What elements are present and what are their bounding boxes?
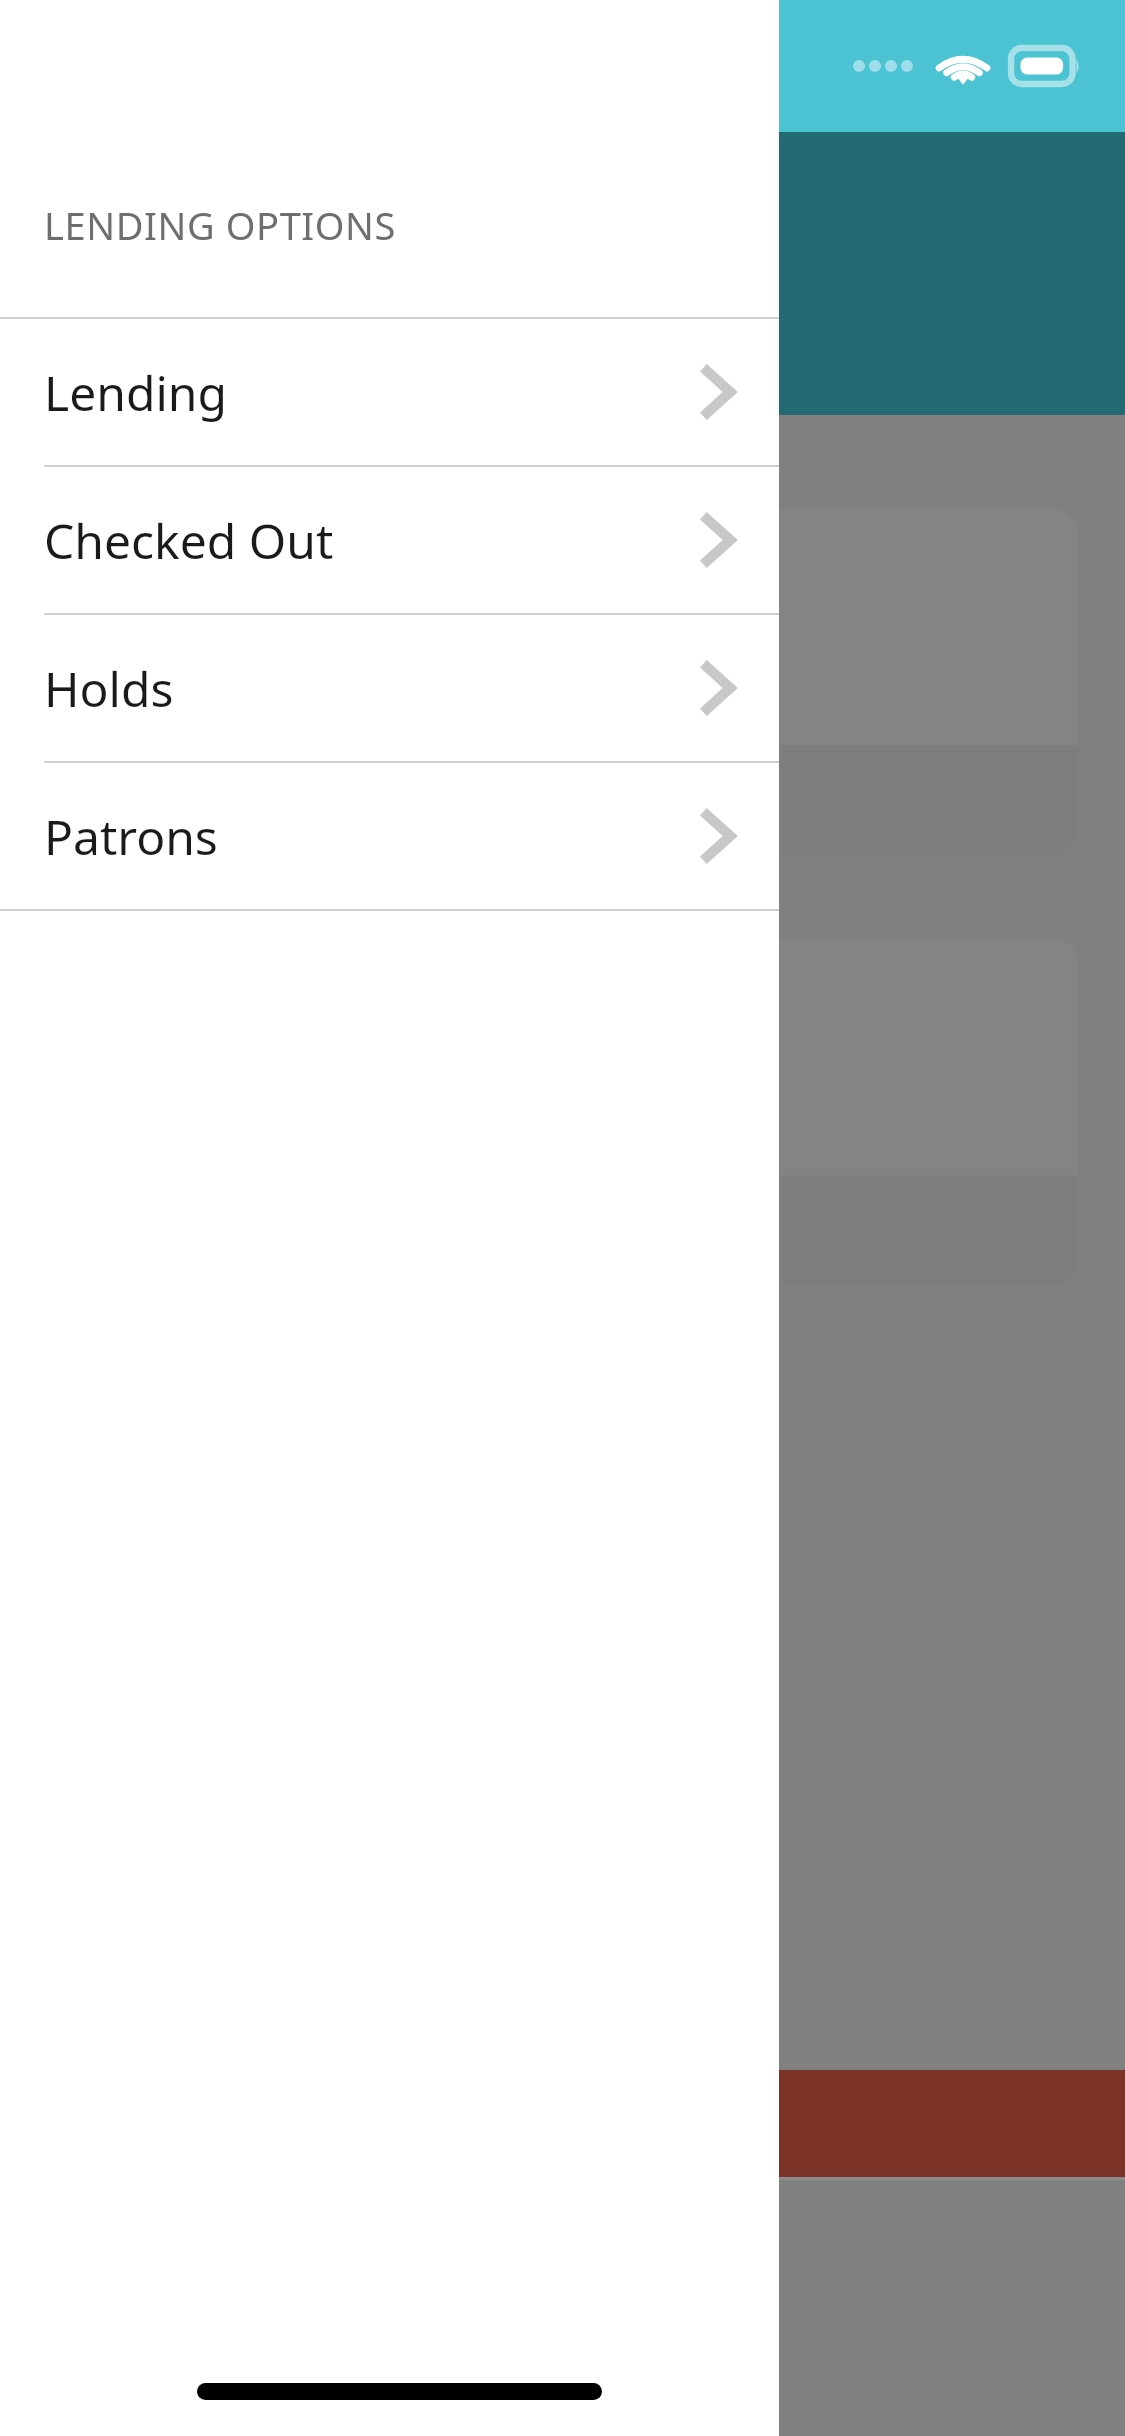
button[interactable]: Lending [0,319,779,465]
staticText: Lending [44,360,227,425]
staticText: LENDING OPTIONS [44,199,397,251]
button[interactable]: Settings [0,2195,1125,2355]
button[interactable]: Holds [0,615,779,761]
button[interactable]: Warning [0,2070,1125,2177]
staticText: Holds [44,656,174,721]
button[interactable]: Check In [34,940,1078,1285]
button[interactable]: Checked Out [0,467,779,613]
button[interactable]: Check Out [34,510,1078,855]
button[interactable]: Patrons [0,763,779,909]
staticText: Patrons [44,804,218,869]
staticText: Check Out [78,584,409,671]
staticText: Checked Out [44,508,334,573]
